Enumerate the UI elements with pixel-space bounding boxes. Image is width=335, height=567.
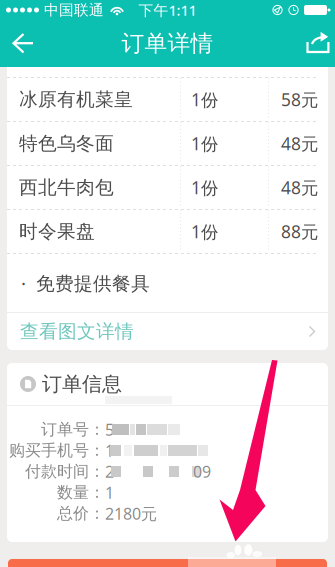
staticText: 5 — [105, 419, 114, 440]
staticText: 下午1:11 — [138, 0, 196, 20]
staticText: 58元 — [281, 88, 318, 111]
staticText: 查看图文详情 — [20, 320, 134, 343]
staticText: 数量： — [57, 483, 105, 502]
staticText: 1份 — [191, 88, 218, 111]
staticText: 再来一单 — [127, 566, 207, 567]
staticText: 冰原有机菜皇 — [19, 88, 133, 111]
staticText: 购买手机号： — [9, 441, 105, 460]
staticText: 订单详情 — [121, 30, 213, 57]
staticText: 时令果盘 — [19, 220, 95, 243]
staticText: · 免费提供餐具 — [21, 271, 150, 295]
staticText: 1份 — [191, 132, 218, 155]
staticText: 48元 — [281, 132, 318, 155]
staticText: 1 — [105, 482, 114, 503]
staticText: 1份 — [191, 220, 218, 243]
staticText: 特色乌冬面 — [19, 132, 114, 155]
staticText: 1份 — [191, 176, 218, 199]
staticText: 1 — [105, 440, 114, 461]
staticText: 2180元 — [105, 503, 157, 524]
button[interactable]: Back — [0, 21, 44, 65]
staticText: 48元 — [281, 176, 318, 199]
staticText: 88元 — [281, 220, 318, 243]
button[interactable]: 查看图文详情 — [7, 313, 328, 350]
staticText: 总价： — [57, 504, 105, 523]
button[interactable]: 再来一单 — [8, 559, 327, 567]
staticText: 付款时间： — [25, 462, 105, 481]
staticText: 订单号： — [41, 420, 105, 439]
staticText: 2 — [105, 461, 114, 482]
staticText: 订单信息 — [42, 372, 122, 396]
staticText: 中国联通 — [44, 1, 104, 19]
staticText: 09 — [193, 461, 211, 482]
button[interactable]: Share — [291, 21, 335, 65]
staticText: 西北牛肉包 — [19, 176, 114, 199]
